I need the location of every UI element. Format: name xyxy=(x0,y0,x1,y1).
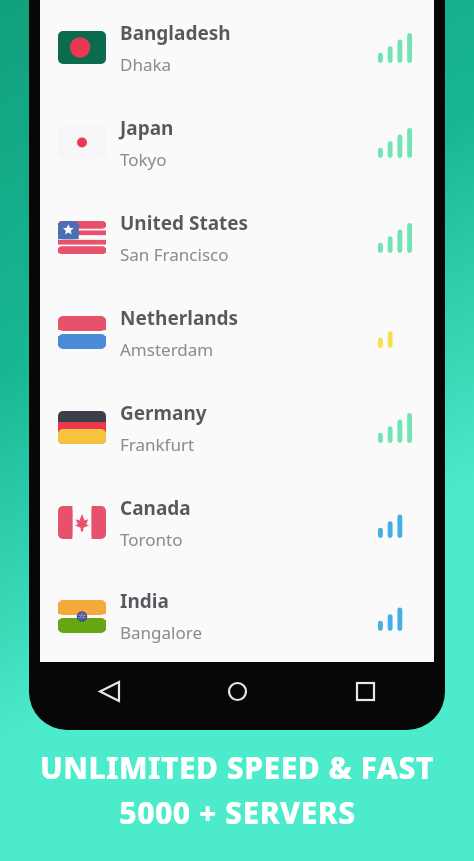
staticText: United States xyxy=(120,210,249,236)
staticText: Bangalore xyxy=(120,621,203,644)
button[interactable]: United States xyxy=(40,190,434,285)
staticText: Amsterdam xyxy=(120,338,214,361)
staticText: India xyxy=(120,588,169,614)
button[interactable]: India xyxy=(40,570,434,662)
staticText: Canada xyxy=(120,495,191,521)
staticText: 5000 + SERVERS xyxy=(119,792,356,833)
button[interactable]: Back xyxy=(92,674,126,708)
staticText: Bangladesh xyxy=(120,20,231,46)
staticText: Tokyo xyxy=(120,148,167,171)
staticText: Frankfurt xyxy=(120,433,195,456)
staticText: Toronto xyxy=(120,528,183,551)
staticText: Dhaka xyxy=(120,53,172,76)
staticText: San Francisco xyxy=(120,243,229,266)
staticText: Netherlands xyxy=(120,305,239,331)
button[interactable]: Canada xyxy=(40,475,434,570)
button[interactable]: Home xyxy=(220,674,254,708)
button[interactable]: Netherlands xyxy=(40,285,434,380)
button[interactable]: Japan xyxy=(40,95,434,190)
button[interactable]: Bangladesh xyxy=(40,0,434,95)
staticText: UNLIMITED SPEED & FAST xyxy=(40,747,434,788)
staticText: Japan xyxy=(120,115,174,141)
button[interactable]: Recent apps xyxy=(348,674,382,708)
staticText: Germany xyxy=(120,400,207,426)
button[interactable]: Germany xyxy=(40,380,434,475)
